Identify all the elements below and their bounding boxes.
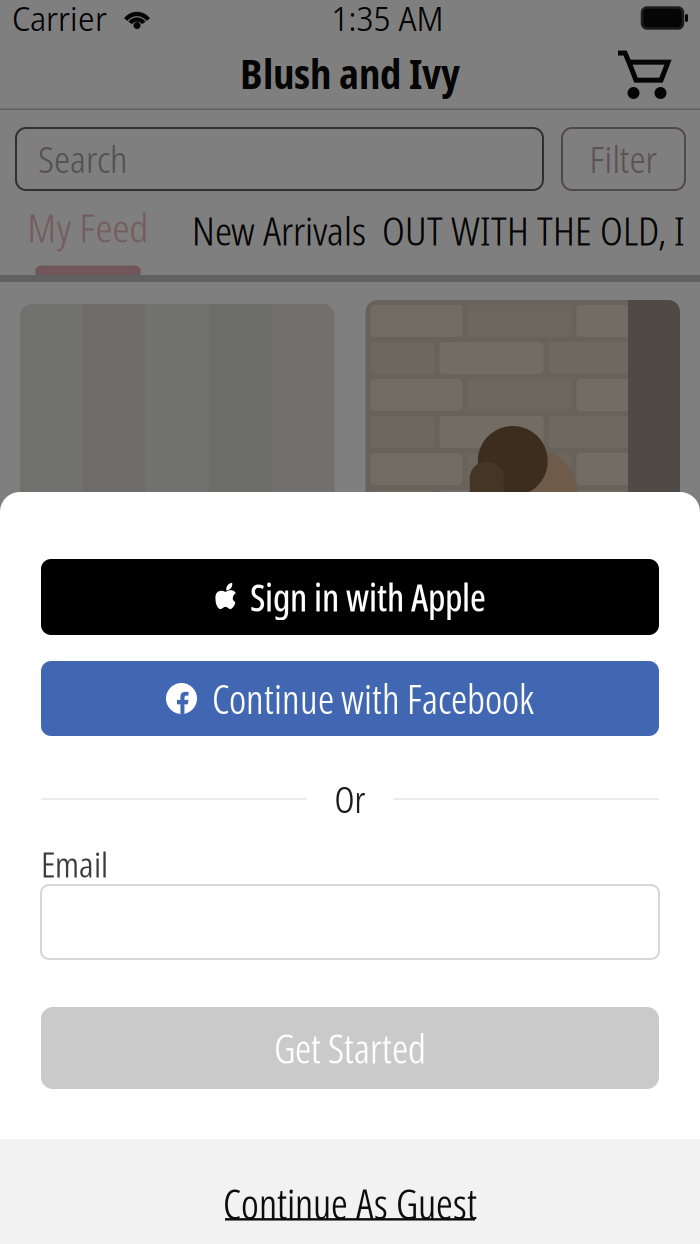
- button[interactable]: Get Started: [41, 1007, 659, 1089]
- staticText: Search: [38, 134, 127, 183]
- button[interactable]: Sign in with Apple: [41, 559, 659, 635]
- staticText: Carrier: [12, 0, 107, 41]
- staticText: Get Started: [274, 1021, 426, 1075]
- button[interactable]: My Feed: [0, 206, 176, 277]
- button[interactable]: Cart: [614, 45, 672, 101]
- button[interactable]: Filter: [562, 128, 685, 190]
- staticText: Blush and Ivy: [240, 45, 460, 101]
- staticText: Continue with Facebook: [212, 671, 534, 726]
- staticText: New Arrivals: [192, 204, 366, 257]
- button[interactable]: Continue As Guest: [0, 1139, 700, 1244]
- staticText: Filter: [589, 134, 657, 183]
- staticText: Sign in with Apple: [250, 572, 486, 622]
- staticText: Email: [41, 840, 108, 888]
- staticText: My Feed: [27, 201, 148, 254]
- staticText: Continue As Guest: [223, 1175, 477, 1232]
- staticText: 1:35 AM: [331, 0, 443, 41]
- button[interactable]: OUT WITH THE OLD, I: [382, 209, 685, 274]
- staticText: OUT WITH THE OLD, I: [382, 204, 685, 257]
- button[interactable]: Continue with Facebook: [41, 661, 659, 736]
- button[interactable]: New Arrivals: [176, 209, 382, 274]
- staticText: Or: [334, 774, 365, 823]
